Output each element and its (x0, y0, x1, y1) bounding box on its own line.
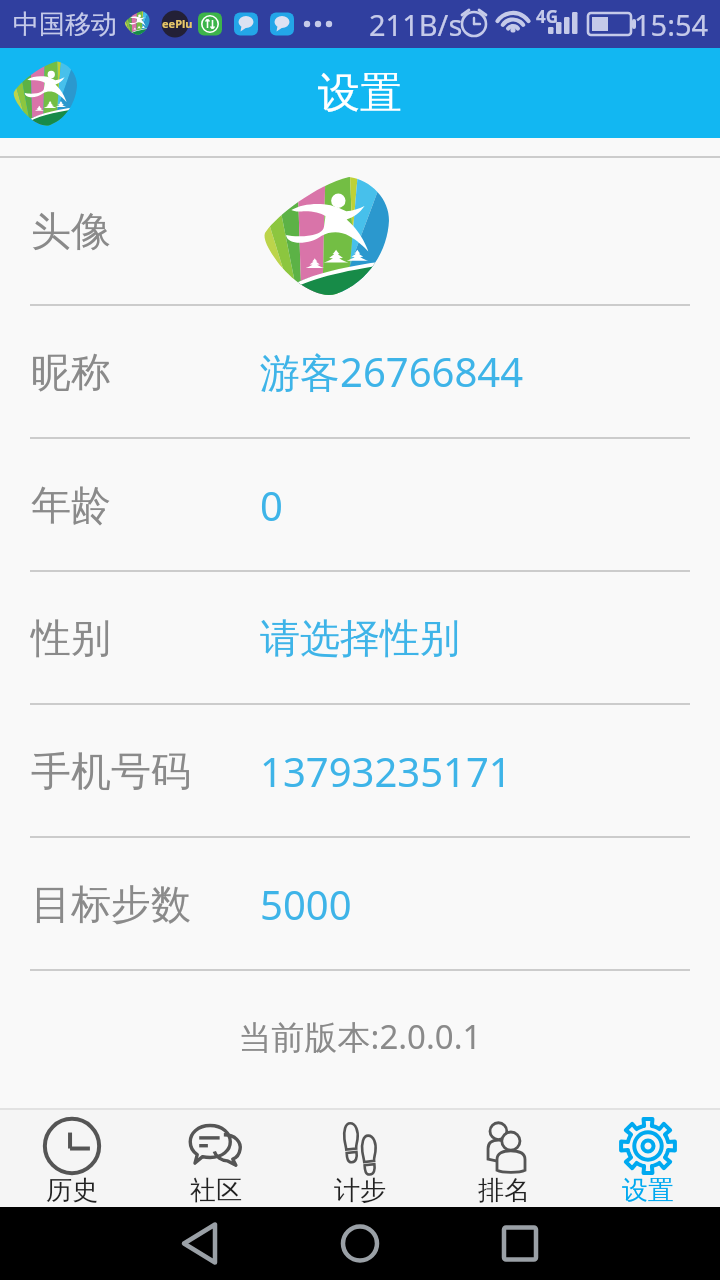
staticText: 游客26766844 (260, 344, 524, 399)
button[interactable]: 历史 (0, 1110, 144, 1207)
staticText: 5000 (260, 877, 352, 931)
staticText: 15:54 (634, 5, 709, 44)
staticText: 0 (260, 478, 283, 532)
staticText: 头像 (31, 206, 111, 256)
staticText: 计步 (334, 1174, 386, 1207)
button[interactable]: 排名 (432, 1110, 576, 1207)
button[interactable]: 昵称 (0, 306, 720, 437)
staticText: 设置 (318, 67, 402, 120)
staticText: 性别 (31, 613, 260, 663)
staticText: 设置 (622, 1174, 674, 1207)
button[interactable]: 年龄 (0, 439, 720, 570)
staticText: 4G (536, 5, 559, 28)
button[interactable]: 头像 (0, 158, 720, 304)
staticText: 手机号码 (31, 746, 260, 796)
button[interactable]: 手机号码 (0, 705, 720, 836)
button[interactable]: 目标步数 (0, 838, 720, 969)
button[interactable]: 计步 (288, 1110, 432, 1207)
staticText: 请选择性别 (260, 613, 460, 663)
staticText: 目标步数 (31, 879, 260, 929)
button[interactable]: App logo (14, 61, 78, 125)
staticText: eePlu (162, 16, 193, 31)
staticText: 排名 (478, 1174, 530, 1207)
staticText: 昵称 (31, 347, 260, 397)
staticText: 211B/s (369, 5, 463, 44)
staticText: 历史 (46, 1174, 98, 1207)
button[interactable]: 性别 (0, 572, 720, 703)
staticText: 13793235171 (260, 744, 512, 798)
staticText: 社区 (190, 1174, 242, 1207)
staticText: 年龄 (31, 480, 260, 530)
staticText: 中国移动 (13, 8, 117, 41)
staticText: 当前版本:2.0.0.1 (0, 1014, 720, 1059)
button[interactable]: 设置 (576, 1110, 720, 1207)
button[interactable]: 社区 (144, 1110, 288, 1207)
